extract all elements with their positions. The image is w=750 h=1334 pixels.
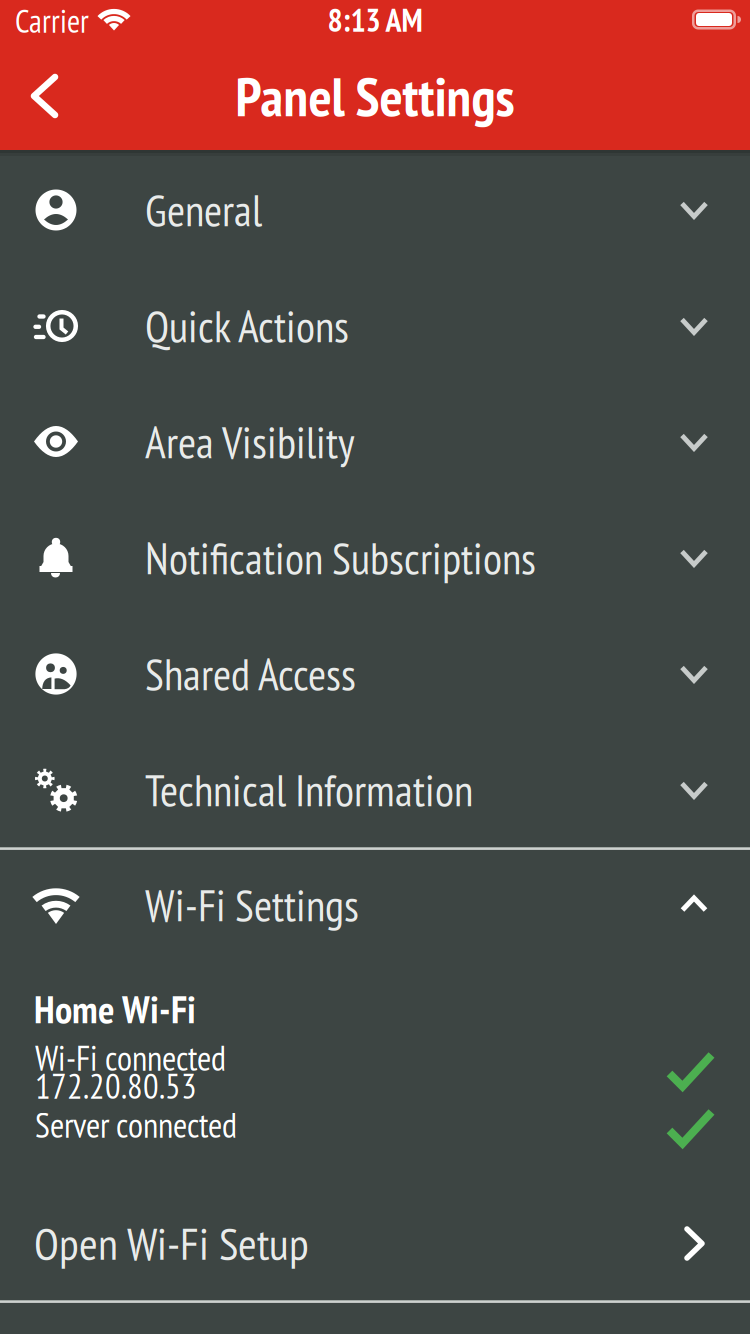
staticText: Carrier [15,1,89,41]
staticText: Shared Access [145,646,356,702]
staticText: Quick Actions [145,298,349,354]
staticText: Notification Subscriptions [145,530,536,586]
button[interactable]: Area Visibility [0,384,750,500]
staticText: 8:13 AM [327,0,422,40]
staticText: General [145,182,262,238]
button[interactable]: Technical Information [0,732,750,848]
staticText: 172.20.80.53 [35,1064,197,1108]
staticText: Open Wi-Fi Setup [34,1214,309,1272]
button[interactable]: Quick Actions [0,268,750,384]
button[interactable]: Notification Subscriptions [0,500,750,616]
staticText: Home Wi-Fi [34,985,196,1033]
button[interactable]: Wi-Fi Settings [0,847,750,963]
button[interactable]: Shared Access [0,616,750,732]
staticText: Wi-Fi connected [35,1036,226,1080]
staticText: Panel Settings [235,61,514,130]
button[interactable]: Open Wi-Fi Setup [0,1185,750,1301]
button[interactable]: General [0,152,750,268]
staticText: Server connected [35,1103,237,1147]
staticText: Area Visibility [145,414,355,470]
button[interactable] [0,0,88,150]
staticText: Wi-Fi Settings [145,877,359,933]
staticText: Technical Information [145,762,473,818]
